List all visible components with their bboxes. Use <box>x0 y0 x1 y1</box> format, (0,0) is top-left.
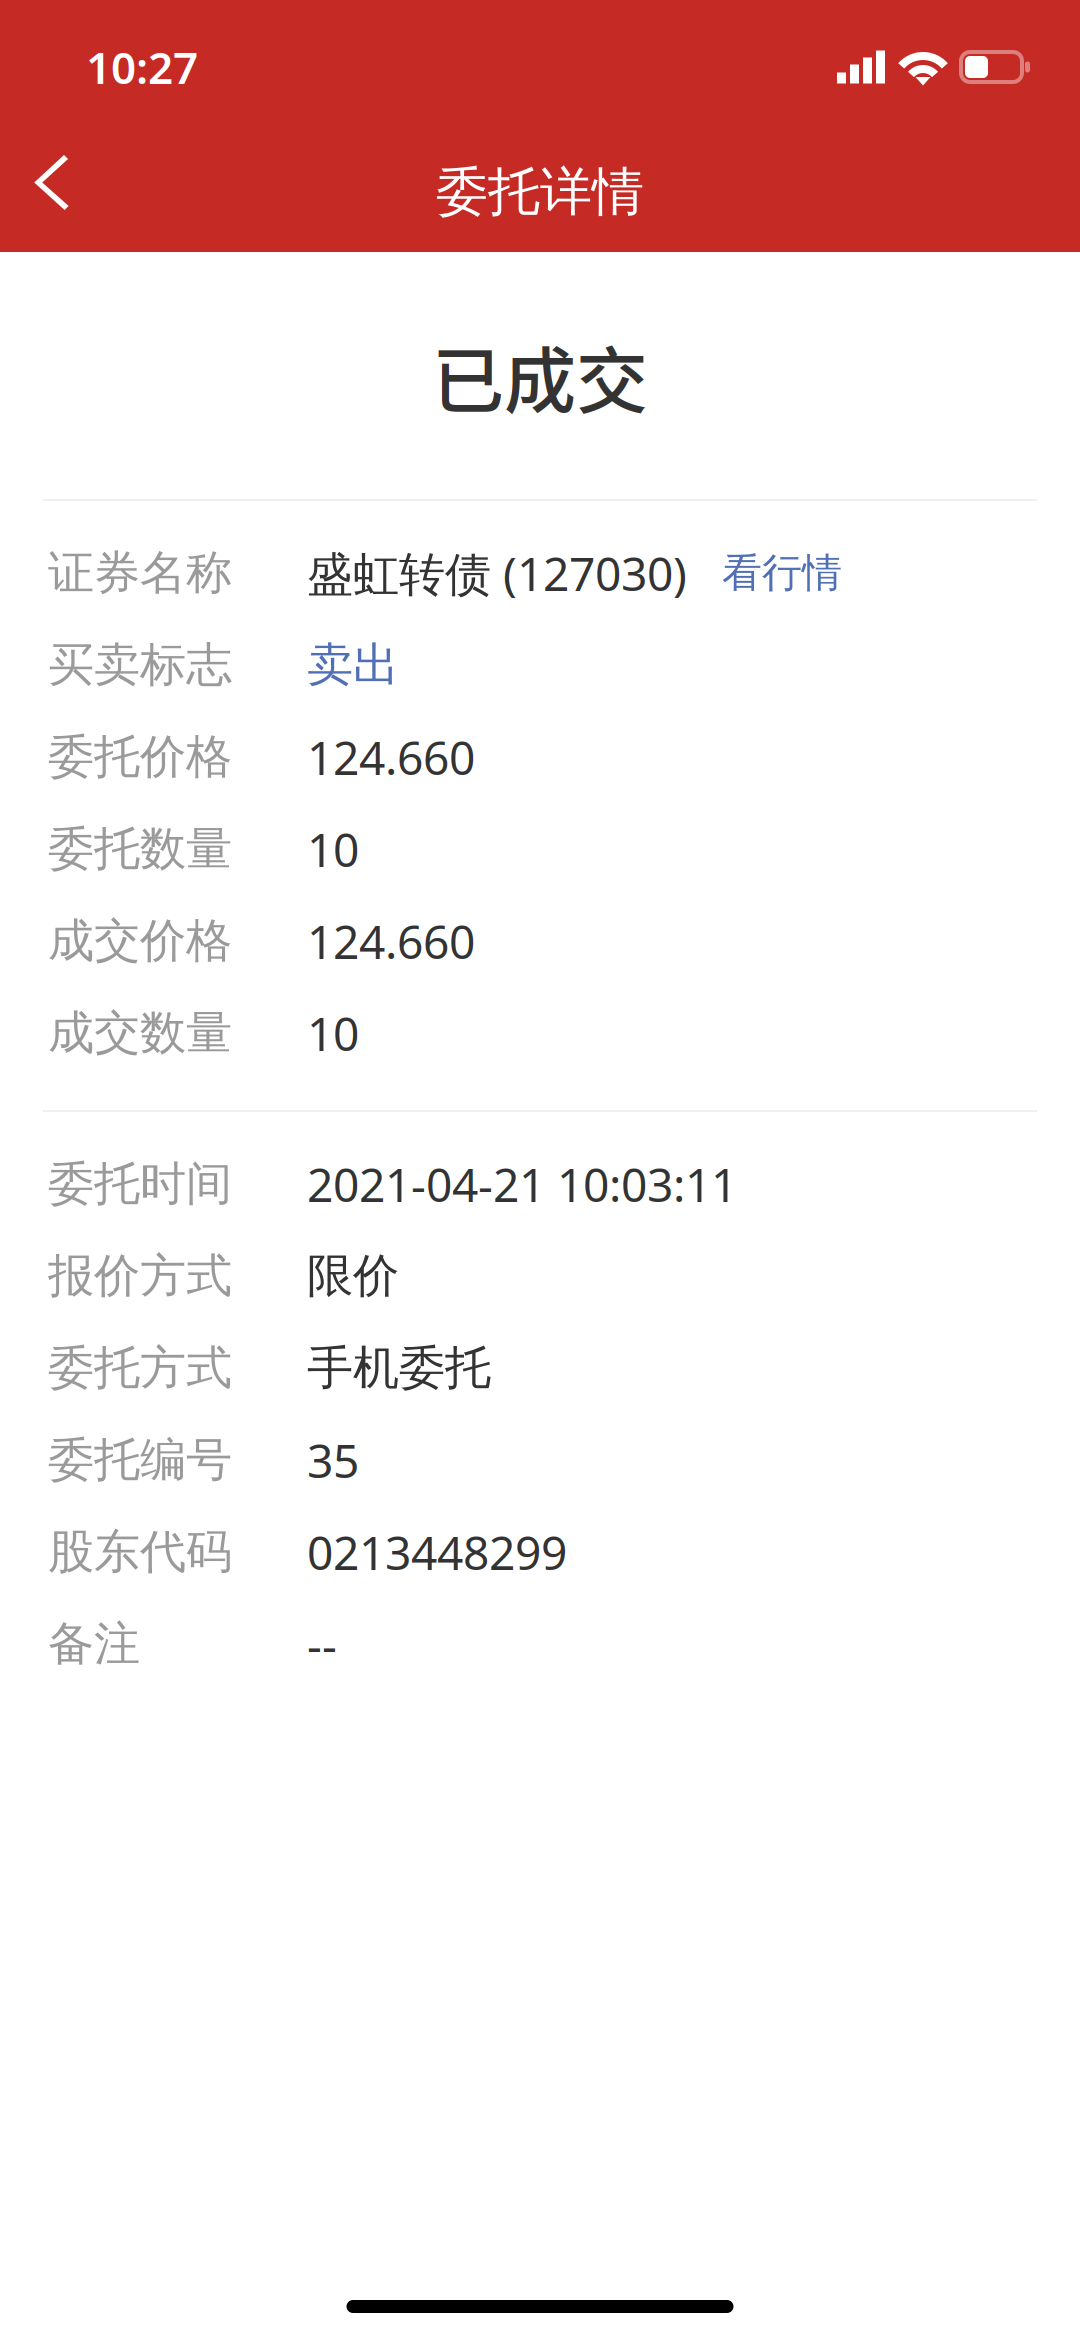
staticText: 备注 <box>48 1615 140 1673</box>
staticText: 委托时间 <box>48 1155 232 1213</box>
staticText: 委托详情 <box>436 160 644 224</box>
staticText: 35 <box>307 1429 359 1491</box>
staticText: -- <box>307 1613 337 1675</box>
staticText: 证券名称 <box>48 544 232 602</box>
staticText: 委托价格 <box>48 728 232 786</box>
staticText: 2021-04-21 10:03:11 <box>307 1153 737 1215</box>
staticText: 成交数量 <box>48 1004 232 1062</box>
button[interactable]: 看行情 <box>687 527 856 619</box>
staticText: 成交价格 <box>48 912 232 970</box>
staticText: 限价 <box>307 1247 399 1305</box>
staticText: 124.660 <box>307 910 475 972</box>
staticText: 买卖标志 <box>48 636 232 694</box>
staticText: 委托方式 <box>48 1339 232 1397</box>
staticText: 124.660 <box>307 726 475 788</box>
staticText: 股东代码 <box>48 1523 232 1581</box>
staticText: 已成交 <box>432 323 648 428</box>
staticText: 委托编号 <box>48 1431 232 1489</box>
staticText: 10 <box>307 1002 359 1064</box>
staticText: 0213448299 <box>307 1521 567 1583</box>
staticText: 委托数量 <box>48 820 232 878</box>
staticText: 10 <box>307 818 359 880</box>
staticText: 看行情 <box>722 548 842 597</box>
staticText: 盛虹转债 (127030) <box>307 542 687 604</box>
staticText: 卖出 <box>307 636 399 694</box>
staticText: 手机委托 <box>307 1339 491 1397</box>
button[interactable]: 返回 <box>0 126 120 252</box>
staticText: 报价方式 <box>48 1247 232 1305</box>
staticText: 10:27 <box>86 38 198 96</box>
